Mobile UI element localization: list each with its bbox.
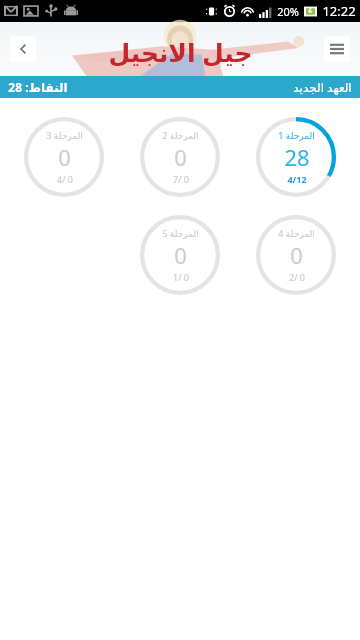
staticText: المرحلة 5 [162,227,199,239]
staticText: 0 [290,240,303,270]
staticText: 2/ 0 [289,271,305,283]
staticText: 0 [174,240,187,270]
staticText: المرحلة 1 [278,129,315,141]
staticText: 12:22 [322,2,356,20]
staticText: 0 [174,142,187,172]
staticText: 7/ 0 [173,173,189,185]
staticText: العهد الجديد [293,79,352,95]
staticText: 1/ 0 [173,271,189,283]
staticText: المرحلة 3 [46,129,83,141]
staticText: 4/ 0 [57,173,73,185]
button[interactable]: المرحلة 3 [10,110,118,204]
staticText: 28 [284,142,310,172]
button[interactable]: Menu [324,36,350,62]
button[interactable]: المرحلة 5 [126,208,234,302]
staticText: المرحلة 2 [162,129,199,141]
button[interactable]: Back [10,36,36,62]
staticText: 20% [277,4,299,19]
staticText: جيل الانجيل [108,35,253,69]
button[interactable]: المرحلة 1 [242,110,350,204]
staticText: 4/12 [287,173,307,185]
button[interactable]: المرحلة 2 [126,110,234,204]
button[interactable]: المرحلة 4 [242,208,350,302]
staticText: النقاط: 28 [8,79,68,95]
staticText: المرحلة 4 [278,227,315,239]
staticText: 0 [58,142,71,172]
